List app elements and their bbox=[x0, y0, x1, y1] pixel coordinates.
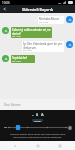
button[interactable]: Decrease font size bbox=[3, 125, 8, 130]
button[interactable]: Kalem içi selden ederim mi, ne derim? bbox=[2, 27, 73, 38]
staticText: Küçük bbox=[34, 119, 41, 122]
button[interactable]: İyi Öler. Yakınlarda gizer bir yer ileti… bbox=[2, 41, 73, 52]
staticText: Ünü Görme bbox=[4, 103, 21, 107]
button[interactable]: Home bbox=[31, 141, 45, 150]
button[interactable]: Increase font size bbox=[67, 125, 72, 130]
staticText: 4G bbox=[58, 1, 62, 4]
button[interactable]: Merhaba Murat bbox=[2, 16, 73, 24]
staticText: öğl. 10:03 bbox=[12, 35, 22, 37]
staticText: Eldersinli Başarılı bbox=[22, 7, 53, 12]
staticText: Önerilen öğeler daha küçük veya daha büy… bbox=[10, 133, 66, 136]
staticText: İyi Öler. Yakınlarda gizer bir yer ileti… bbox=[23, 42, 63, 49]
staticText: öğl. 10:02 bbox=[39, 21, 49, 23]
staticText: Teşekkürler! bbox=[12, 56, 28, 60]
staticText: A bbox=[32, 114, 34, 117]
staticText: A bbox=[41, 112, 44, 117]
staticText: A bbox=[36, 113, 39, 117]
staticText: Kalem içi selden ederim mi, ne derim? bbox=[12, 28, 51, 35]
staticText: öğl. 10:05 bbox=[12, 60, 22, 62]
button[interactable]: Back bbox=[8, 141, 22, 150]
button[interactable]: Recents bbox=[53, 141, 67, 150]
button[interactable]: Font size slider bbox=[8, 125, 67, 130]
button[interactable]: Ünü Görme bbox=[0, 99, 75, 110]
staticText: öğl. 10:04 bbox=[23, 49, 33, 51]
staticText: 10:06 bbox=[2, 1, 10, 5]
staticText: Merhaba Murat bbox=[39, 17, 59, 21]
staticText: Görünümleri uygulamanın boyutu değişecek… bbox=[13, 136, 62, 139]
button[interactable]: Teşekkürler! bbox=[2, 55, 73, 63]
button[interactable]: Back bbox=[0, 5, 9, 13]
